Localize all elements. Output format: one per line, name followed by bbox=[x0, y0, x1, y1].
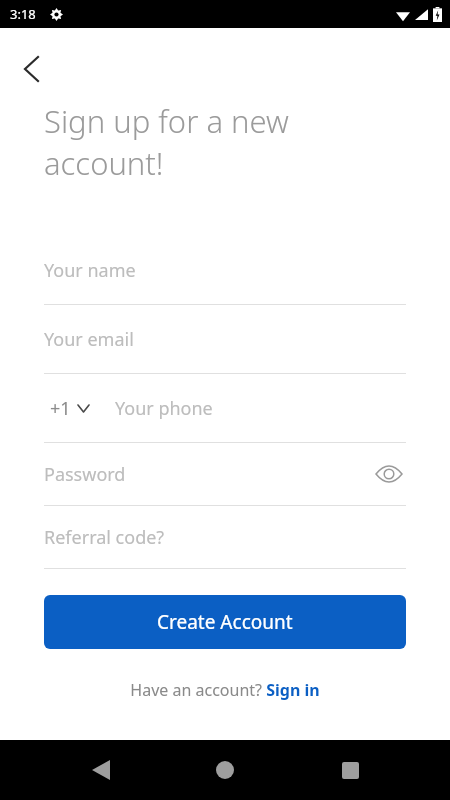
button[interactable]: Your name bbox=[44, 236, 406, 304]
button[interactable]: Show password bbox=[372, 457, 406, 491]
button[interactable]: Have an account? Sign in bbox=[122, 675, 328, 705]
staticText: Have an account? Sign in bbox=[130, 679, 320, 701]
staticText: Your phone bbox=[115, 396, 213, 421]
staticText: Your name bbox=[44, 258, 136, 283]
staticText: 3:18 bbox=[10, 5, 36, 23]
staticText: Your email bbox=[44, 327, 134, 352]
staticText: Referral code? bbox=[44, 525, 165, 550]
button[interactable]: +1 bbox=[44, 390, 93, 427]
button[interactable]: Recent apps bbox=[326, 746, 374, 794]
button[interactable]: Your phone bbox=[115, 396, 406, 421]
button[interactable]: Your email bbox=[44, 305, 406, 373]
button[interactable]: Back bbox=[77, 746, 125, 794]
button[interactable]: Back bbox=[12, 50, 50, 88]
staticText: Password bbox=[44, 462, 126, 487]
button[interactable]: Create Account bbox=[44, 595, 406, 649]
button[interactable]: Referral code? bbox=[44, 506, 406, 568]
staticText: +1 bbox=[50, 396, 71, 421]
staticText: Sign up for a new account! bbox=[44, 100, 289, 184]
button[interactable]: Home bbox=[201, 746, 249, 794]
staticText: Create Account bbox=[157, 609, 293, 635]
button[interactable]: Password bbox=[44, 443, 406, 505]
